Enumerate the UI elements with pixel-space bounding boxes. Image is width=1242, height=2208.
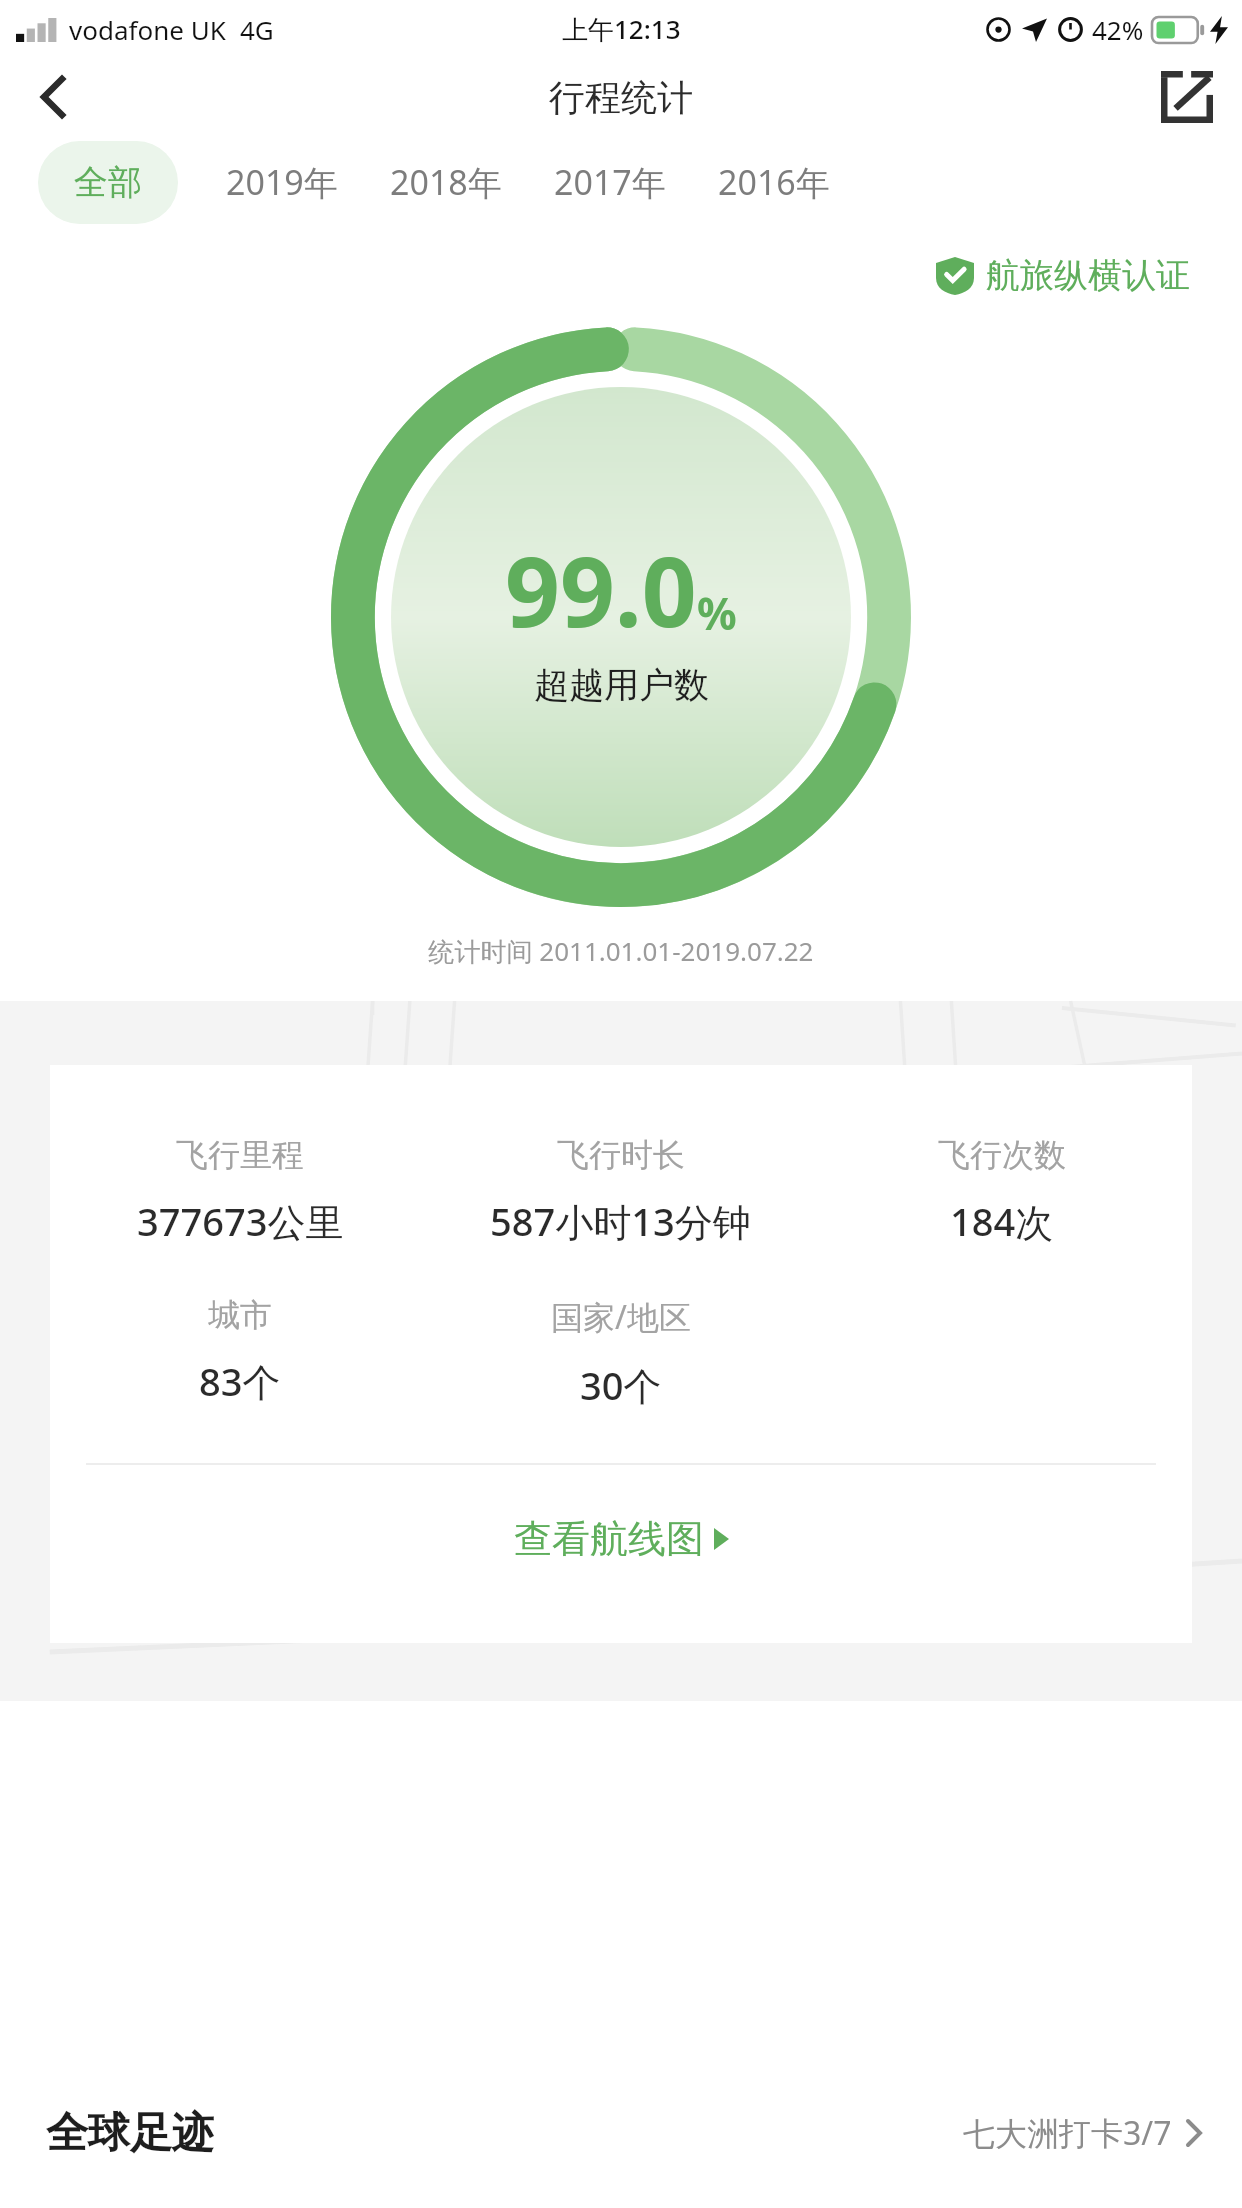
staticText: 行程统计	[549, 75, 693, 120]
staticText: %	[697, 583, 737, 643]
button[interactable]: 2016年	[692, 139, 856, 225]
staticText: 42%	[1092, 12, 1144, 47]
button[interactable]: Share	[1144, 58, 1230, 136]
staticText: 184次	[950, 1195, 1054, 1247]
staticText: 4G	[240, 12, 274, 47]
button[interactable]: 2018年	[364, 139, 528, 225]
button[interactable]: 全部	[38, 141, 178, 224]
staticText: 83个	[199, 1355, 281, 1407]
button[interactable]: Back	[10, 58, 96, 136]
staticText: 2018年	[390, 159, 502, 205]
staticText: 2019年	[226, 159, 338, 205]
button[interactable]: 2019年	[200, 139, 364, 225]
staticText: 全球足迹	[46, 2107, 214, 2160]
staticText: 查看航线图	[514, 1515, 704, 1563]
staticText: 99.0	[505, 524, 697, 655]
staticText: 2017年	[554, 159, 666, 205]
staticText: 七大洲打卡3/7	[963, 2111, 1172, 2155]
staticText: 航旅纵横认证	[986, 254, 1190, 297]
staticText: 城市	[208, 1295, 272, 1335]
staticText: 上午12:13	[562, 11, 681, 47]
staticText: 飞行里程	[176, 1135, 304, 1175]
staticText: vodafone UK	[69, 12, 226, 47]
staticText: 统计时间 2011.01.01-2019.07.22	[0, 933, 1242, 969]
button[interactable]: 全球足迹	[0, 2058, 1242, 2208]
button[interactable]: 航旅纵横认证	[936, 254, 1190, 297]
staticText: 飞行时长	[557, 1135, 685, 1175]
staticText: 全部	[74, 161, 142, 204]
staticText: 2016年	[718, 159, 830, 205]
staticText: 飞行次数	[938, 1135, 1066, 1175]
staticText: 国家/地区	[551, 1295, 691, 1339]
staticText: 587小时13分钟	[490, 1195, 751, 1247]
staticText: 377673公里	[137, 1195, 344, 1247]
staticText: 超越用户数	[534, 663, 709, 707]
button[interactable]: 2017年	[528, 139, 692, 225]
button[interactable]: 查看航线图	[50, 1465, 1192, 1643]
staticText: 30个	[580, 1359, 662, 1411]
